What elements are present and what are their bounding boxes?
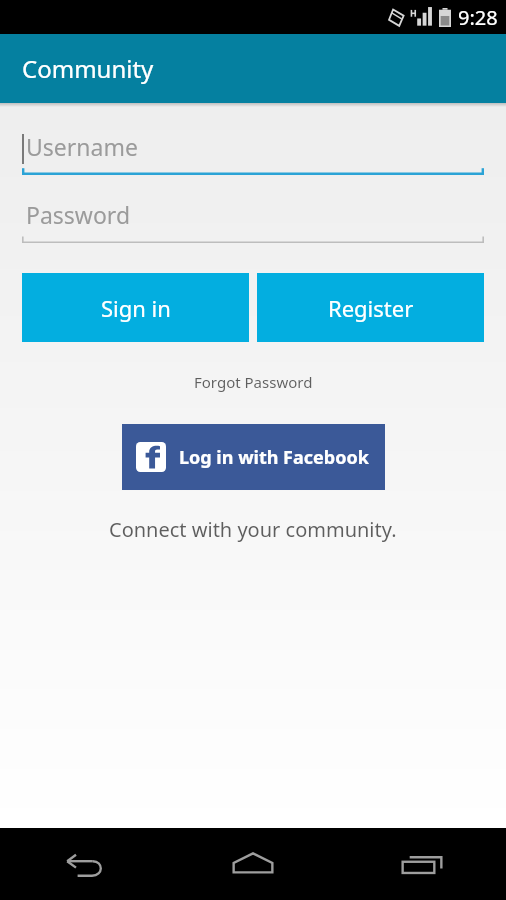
button[interactable]: Register [257,273,484,342]
staticText: Log in with Facebook [179,445,369,470]
staticText: Password [26,199,131,230]
button[interactable]: Password [22,197,484,243]
staticText: Forgot Password [194,372,313,392]
button[interactable]: Sign in [22,273,249,342]
staticText: Username [26,131,138,162]
other: Facebook [136,442,166,472]
button[interactable]: Forgot Password [184,368,323,396]
button[interactable]: Home [168,828,337,900]
staticText: Register [328,293,414,323]
staticText: Connect with your community. [109,516,397,543]
staticText: Sign in [101,293,171,323]
staticText: Community [22,52,154,85]
button[interactable]: Facebook [122,424,385,490]
button[interactable]: Username [22,129,484,175]
button[interactable]: Recent apps [337,828,506,900]
staticText: 9:28 [458,4,498,31]
button[interactable]: Back [0,828,168,900]
